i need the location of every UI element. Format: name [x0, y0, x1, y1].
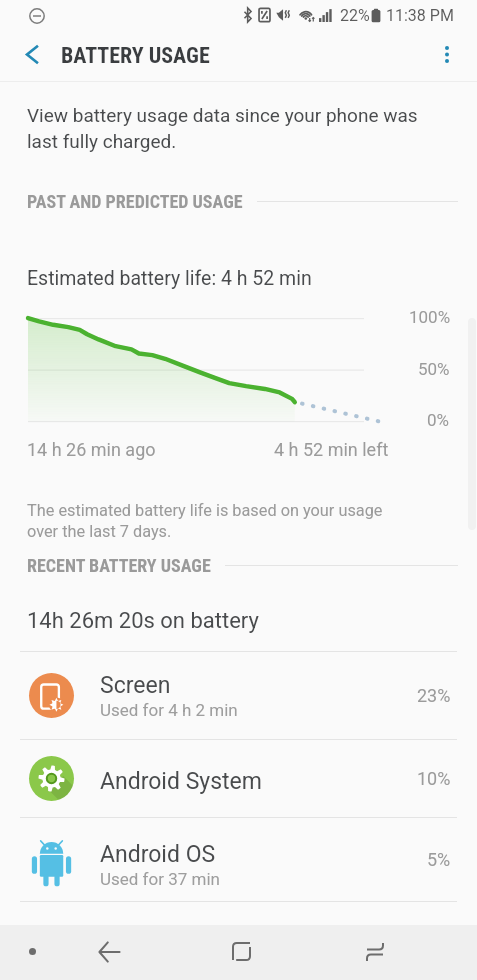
button[interactable]: Back — [79, 925, 139, 980]
button[interactable]: Navigate up — [10, 32, 54, 76]
staticText: 23% — [417, 685, 451, 706]
staticText: Android System — [100, 768, 262, 795]
staticText: 22% — [340, 6, 370, 25]
staticText: 14 h 26 min ago — [27, 439, 156, 460]
staticText: Estimated battery life: 4 h 52 min — [27, 267, 312, 290]
staticText: 50% — [418, 359, 450, 379]
button[interactable]: Home — [211, 925, 271, 980]
staticText: 11:38 PM — [386, 6, 454, 25]
staticText: 4 h 52 min left — [274, 439, 389, 460]
staticText: Used for 37 min — [100, 869, 220, 889]
button[interactable]: Menu — [7, 925, 57, 980]
staticText: View battery usage data since your phone… — [27, 104, 427, 153]
staticText: Android OS — [100, 841, 216, 868]
button[interactable]: Android OS — [0, 818, 477, 901]
button[interactable]: Recents — [345, 925, 405, 980]
button[interactable]: Android System — [0, 740, 477, 817]
staticText: BATTERY USAGE — [61, 43, 210, 69]
staticText: Screen — [100, 672, 171, 699]
staticText: 5% — [427, 849, 451, 870]
staticText: 100% — [409, 307, 451, 327]
staticText: 10% — [417, 768, 451, 789]
staticText: 0% — [427, 410, 450, 430]
staticText: Used for 4 h 2 min — [100, 700, 238, 720]
button[interactable]: More options — [425, 32, 469, 76]
staticText: 14h 26m 20s on battery — [27, 608, 259, 634]
staticText: The estimated battery life is based on y… — [27, 501, 387, 541]
button[interactable]: Screen — [0, 652, 477, 739]
staticText: RECENT BATTERY USAGE — [27, 555, 211, 576]
staticText: PAST AND PREDICTED USAGE — [27, 191, 243, 212]
